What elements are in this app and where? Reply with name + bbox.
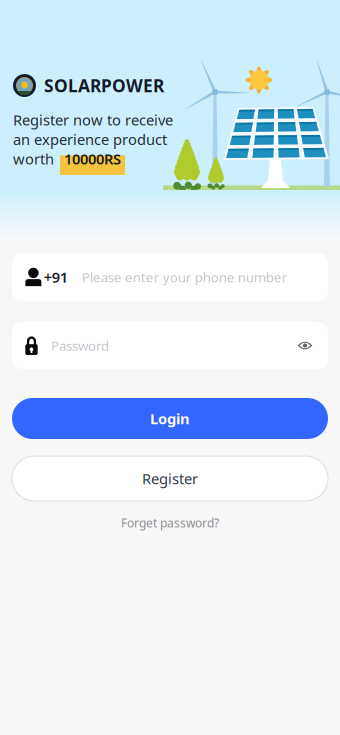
staticText: Register now to receive	[13, 110, 173, 129]
staticText: SOLARPOWER	[44, 74, 164, 97]
staticText: 10000RS	[64, 149, 121, 168]
staticText: worth	[13, 149, 58, 168]
button[interactable]: Show password	[297, 331, 328, 360]
staticText: Password	[51, 337, 109, 354]
button[interactable]: Login	[12, 398, 328, 439]
staticText: Register	[142, 469, 198, 488]
staticText: an experience product	[13, 129, 167, 149]
button[interactable]: Register	[12, 456, 328, 501]
button[interactable]: Forget password?	[111, 511, 229, 535]
staticText: +91	[44, 267, 68, 287]
staticText: Please enter your phone number	[82, 268, 288, 286]
staticText: Login	[150, 409, 190, 428]
staticText: Forget password?	[121, 515, 219, 531]
